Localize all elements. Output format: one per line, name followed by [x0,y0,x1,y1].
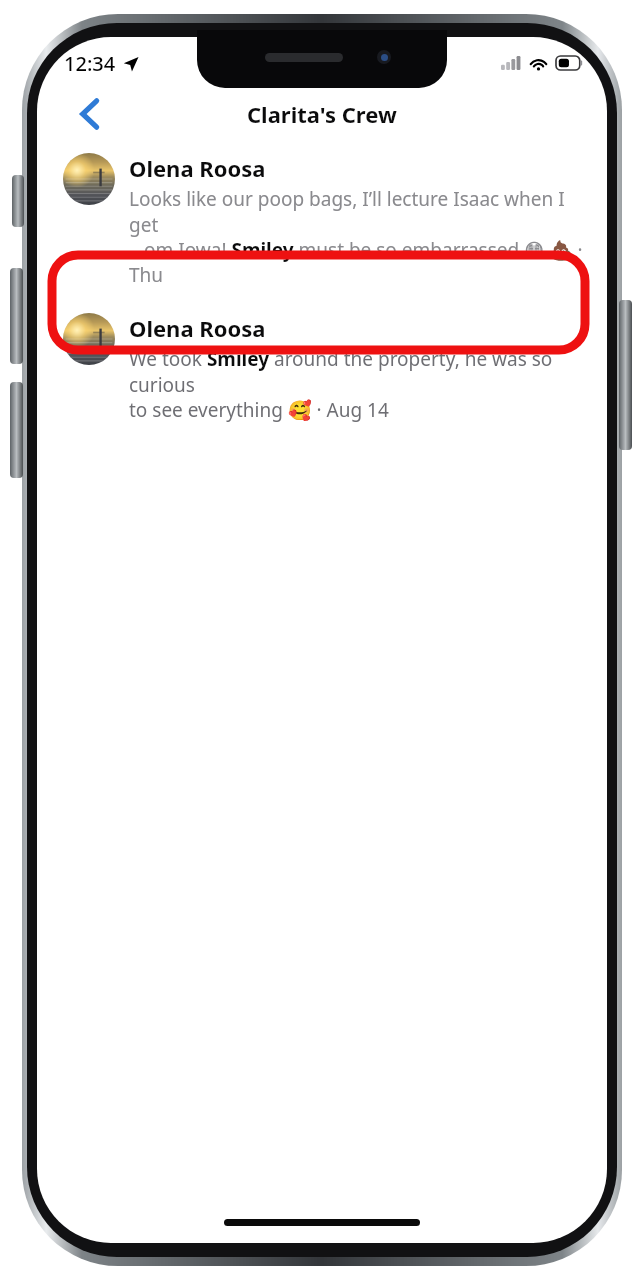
staticText: We took Smiley around the property, he w… [129,346,587,422]
button[interactable]: Back [67,92,111,136]
staticText: 12:34 [64,50,116,77]
button[interactable]: Olena Roosa [37,149,607,291]
staticText: Olena Roosa [129,153,266,183]
staticText: Looks like our poop bags, I’ll lecture I… [129,186,587,287]
staticText: Olena Roosa [129,313,266,343]
button[interactable]: Olena Roosa [37,309,607,426]
staticText: Clarita's Crew [247,99,397,129]
